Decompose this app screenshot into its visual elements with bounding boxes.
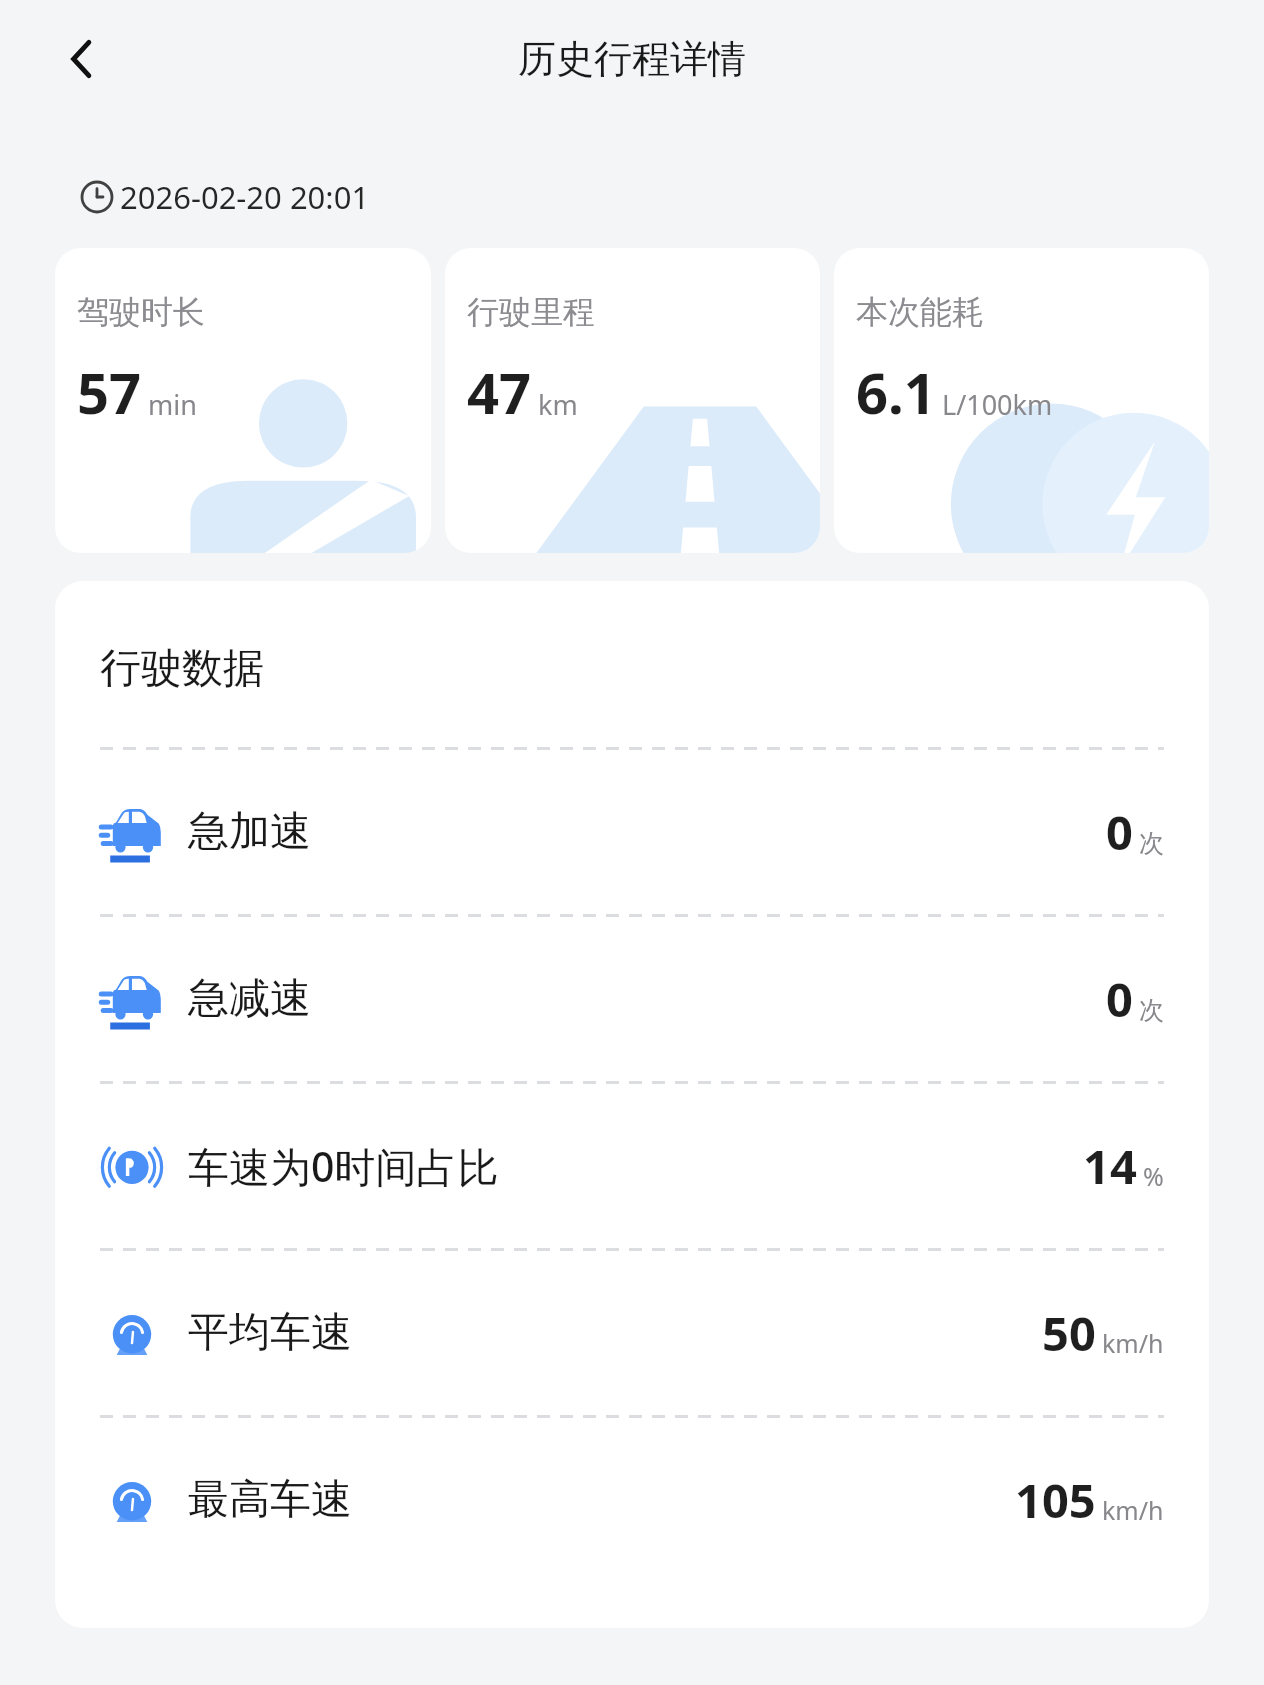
staticText: 急减速	[188, 973, 311, 1025]
staticText: km	[538, 386, 578, 423]
staticText: 0	[1106, 800, 1133, 864]
button[interactable]: 驾驶时长	[55, 248, 431, 553]
button[interactable]: 车速为0时间占比	[55, 1084, 1209, 1248]
staticText: 驾驶时长	[77, 292, 205, 332]
staticText: 平均车速	[188, 1307, 352, 1359]
button[interactable]: 最高车速	[55, 1418, 1209, 1582]
staticText: 50	[1042, 1301, 1096, 1365]
staticText: 105	[1015, 1468, 1096, 1532]
staticText: 次	[1139, 828, 1164, 859]
staticText: 47	[467, 354, 532, 430]
staticText: km/h	[1102, 1493, 1164, 1527]
staticText: 急加速	[188, 806, 311, 858]
staticText: 行驶数据	[100, 643, 264, 695]
staticText: %	[1143, 1159, 1164, 1193]
staticText: 最高车速	[188, 1474, 352, 1526]
staticText: min	[148, 386, 197, 423]
staticText: 57	[77, 354, 142, 430]
staticText: 14	[1083, 1134, 1137, 1198]
button[interactable]: 急减速	[55, 917, 1209, 1081]
button[interactable]: 平均车速	[55, 1251, 1209, 1415]
staticText: 次	[1139, 995, 1164, 1026]
staticText: 行驶里程	[467, 292, 595, 332]
button[interactable]: Back	[46, 27, 110, 91]
staticText: 历史行程详情	[518, 35, 746, 83]
staticText: 本次能耗	[856, 292, 984, 332]
staticText: L/100km	[942, 386, 1053, 423]
button[interactable]: 本次能耗	[834, 248, 1209, 553]
staticText: 2026-02-20 20:01	[120, 176, 370, 218]
button[interactable]: 行驶里程	[445, 248, 820, 553]
staticText: 车速为0时间占比	[188, 1138, 499, 1194]
staticText: 6.1	[856, 354, 936, 430]
button[interactable]: 急加速	[55, 750, 1209, 914]
staticText: 0	[1106, 967, 1133, 1031]
staticText: km/h	[1102, 1326, 1164, 1360]
